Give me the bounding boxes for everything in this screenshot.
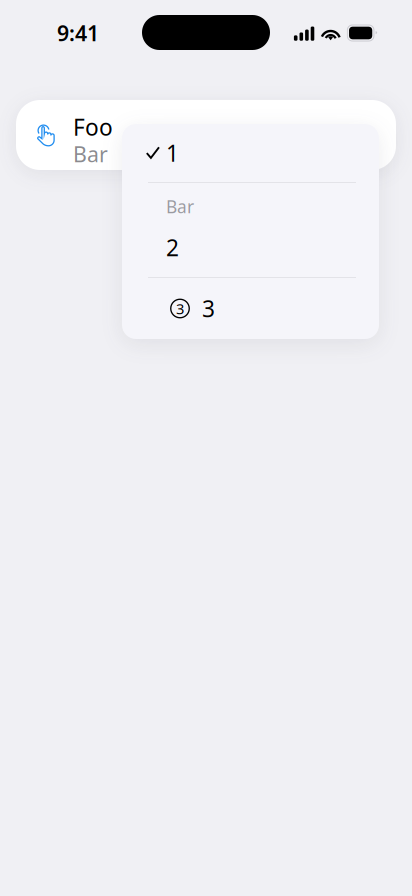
staticText: Bar (166, 195, 194, 218)
button[interactable]: 2 (122, 218, 379, 277)
button[interactable]: 3 (122, 278, 379, 339)
staticText: Bar (73, 140, 108, 168)
staticText: Foo (73, 112, 113, 142)
button[interactable]: 1 (122, 124, 379, 182)
staticText: 9:41 (57, 19, 99, 47)
button[interactable]: Foo (16, 100, 396, 170)
staticText: 1 (166, 138, 179, 168)
staticText: 3 (176, 299, 184, 318)
staticText: 3 (202, 293, 215, 323)
staticText: 2 (166, 232, 179, 262)
